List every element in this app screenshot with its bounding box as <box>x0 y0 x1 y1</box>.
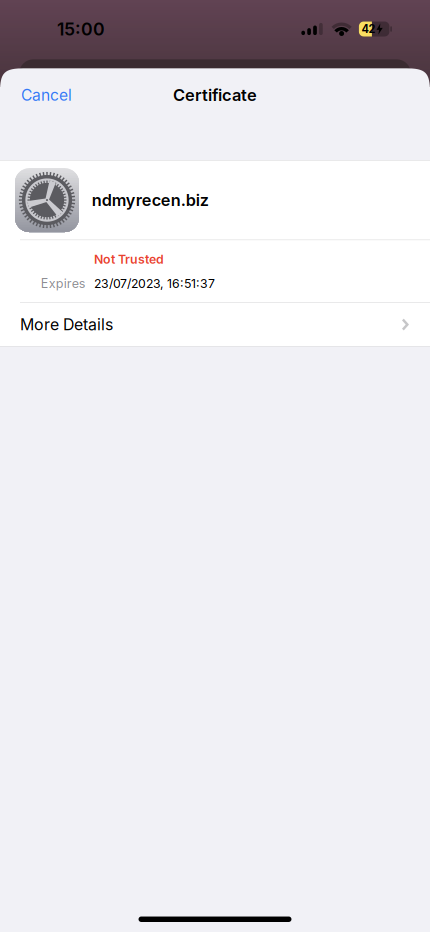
staticText: 23/07/2023, 16:51:37 <box>94 276 215 291</box>
button[interactable]: More Details <box>0 303 430 346</box>
staticText: 42 <box>361 22 375 36</box>
staticText: More Details <box>20 315 113 334</box>
button[interactable]: Cancel <box>15 77 78 114</box>
staticText: Not Trusted <box>94 252 164 267</box>
staticText: ndmyrecen.biz <box>92 190 209 210</box>
staticText: Certificate <box>173 85 257 105</box>
staticText: Cancel <box>21 86 72 105</box>
staticText: Expires <box>41 276 86 291</box>
staticText: 15:00 <box>57 18 105 40</box>
